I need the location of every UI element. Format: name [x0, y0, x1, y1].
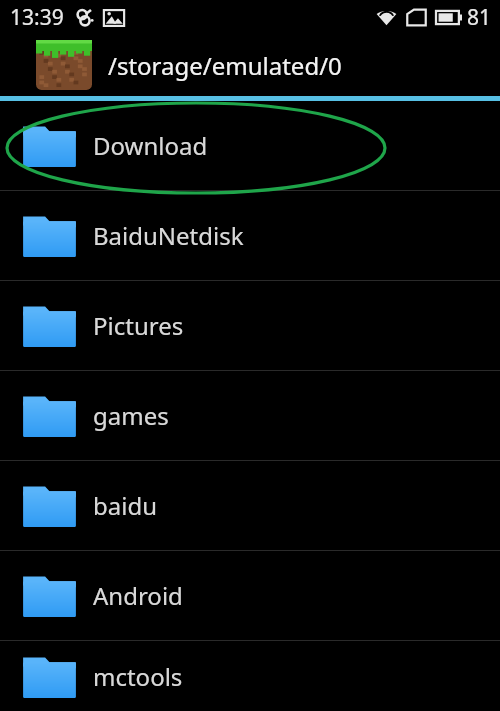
- button[interactable]: Download: [0, 101, 500, 190]
- button[interactable]: baidu: [0, 461, 500, 550]
- staticText: 13:39: [10, 3, 64, 32]
- staticText: BaiduNetdisk: [93, 219, 244, 252]
- staticText: 81: [467, 3, 492, 32]
- staticText: Pictures: [93, 309, 184, 342]
- staticText: mctools: [93, 660, 183, 693]
- staticText: Download: [93, 129, 208, 162]
- staticText: baidu: [93, 489, 158, 522]
- button[interactable]: App icon: [0, 34, 500, 96]
- button[interactable]: games: [0, 371, 500, 460]
- button[interactable]: mctools: [0, 641, 500, 711]
- other: App icon: [36, 40, 92, 90]
- button[interactable]: BaiduNetdisk: [0, 191, 500, 280]
- button[interactable]: Android: [0, 551, 500, 640]
- button[interactable]: Pictures: [0, 281, 500, 370]
- staticText: Android: [93, 579, 183, 612]
- staticText: games: [93, 399, 169, 432]
- staticText: /storage/emulated/0: [108, 49, 342, 82]
